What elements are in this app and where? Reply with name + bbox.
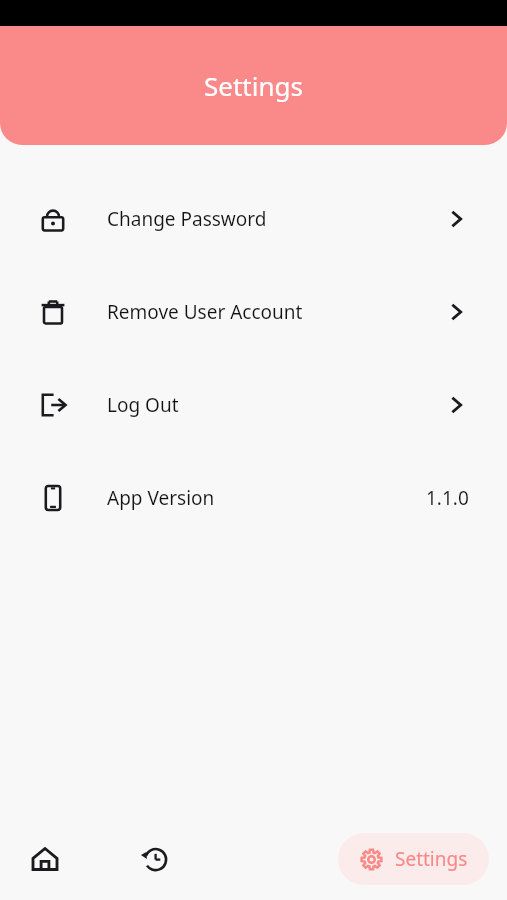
staticText: Remove User Account xyxy=(107,299,303,325)
button[interactable]: Log Out xyxy=(0,358,507,451)
button[interactable]: Remove User Account xyxy=(0,265,507,358)
button[interactable]: Settings xyxy=(338,833,489,885)
staticText: App Version xyxy=(107,485,215,511)
staticText: Settings xyxy=(204,68,303,103)
staticText: 1.1.0 xyxy=(426,485,469,511)
button[interactable]: Home xyxy=(0,818,90,900)
staticText: Change Password xyxy=(107,206,267,232)
button[interactable]: App Version xyxy=(0,451,507,544)
staticText: Log Out xyxy=(107,392,179,418)
staticText: Settings xyxy=(395,846,468,872)
button[interactable]: Change Password xyxy=(0,172,507,265)
button[interactable]: History xyxy=(90,818,220,900)
